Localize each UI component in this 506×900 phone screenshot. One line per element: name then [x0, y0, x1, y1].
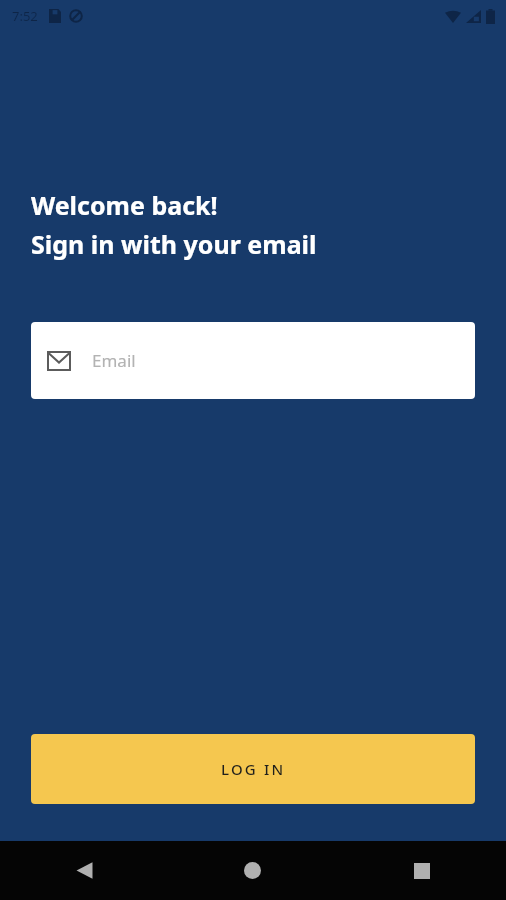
staticText: Welcome back!: [31, 188, 218, 222]
button[interactable]: Email: [31, 322, 475, 399]
staticText: LOG IN: [221, 759, 286, 779]
staticText: Sign in with your email: [31, 227, 317, 261]
button[interactable]: Home: [168, 841, 337, 900]
staticText: 7:52: [12, 7, 38, 25]
button[interactable]: Back: [0, 841, 168, 900]
staticText: Email: [92, 349, 136, 372]
button[interactable]: Recents: [337, 841, 506, 900]
button[interactable]: LOG IN: [31, 734, 475, 804]
